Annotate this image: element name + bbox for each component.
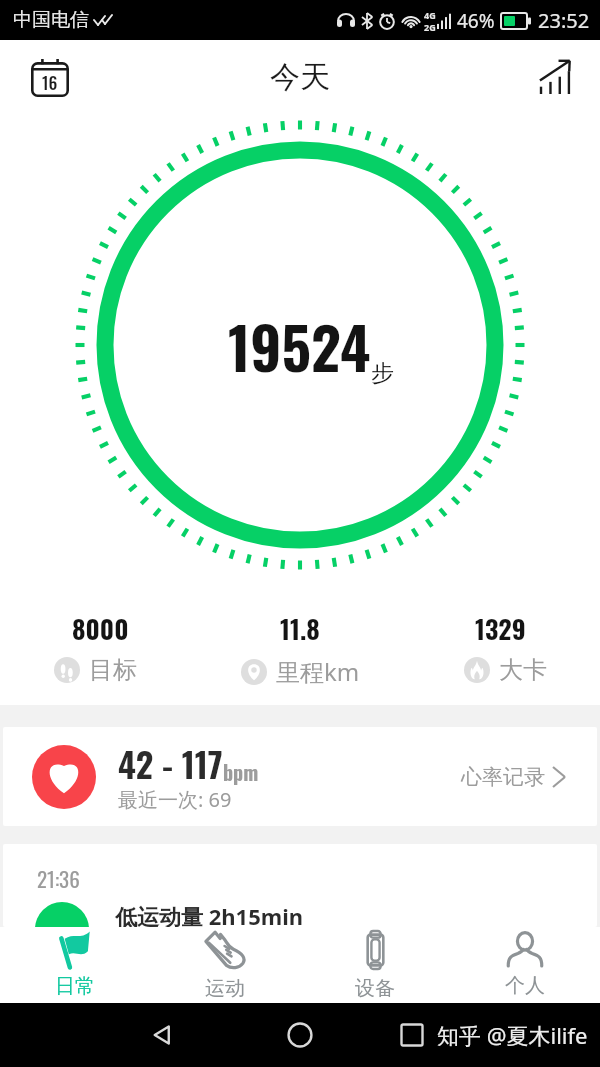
staticText: 心率记录 <box>461 764 545 790</box>
staticText: 46% <box>457 8 495 34</box>
staticText: 知乎 @夏木ilife <box>437 1020 588 1050</box>
staticText: 19524 <box>228 303 371 389</box>
staticText: 最近一次: 69 <box>118 786 232 813</box>
button[interactable]: 42 - 117 <box>3 727 597 826</box>
staticText: 42 - 117 <box>118 738 223 788</box>
staticText: 23:52 <box>538 7 590 34</box>
staticText: 个人 <box>505 973 545 998</box>
staticText: 今天 <box>270 58 330 96</box>
button[interactable]: 1329 <box>400 595 600 705</box>
staticText: 16 <box>42 70 58 95</box>
staticText: 低运动量 2h15min <box>115 901 304 927</box>
staticText: 日常 <box>55 974 95 999</box>
staticText: 11.8 <box>280 609 320 648</box>
staticText: 21:36 <box>37 863 80 894</box>
button[interactable]: Recents <box>395 1018 429 1052</box>
staticText: 运动 <box>205 976 245 1001</box>
button[interactable]: 8000 <box>0 595 200 705</box>
staticText: 目标 <box>89 655 137 685</box>
button[interactable]: 个人 <box>450 927 600 1003</box>
button[interactable]: 21:36 <box>3 844 597 927</box>
staticText: 8000 <box>72 609 129 648</box>
button[interactable]: 设备 <box>300 927 450 1003</box>
button[interactable]: Back <box>142 1015 182 1055</box>
button[interactable]: 日常 <box>0 927 150 1003</box>
staticText: 步 <box>371 359 394 388</box>
staticText: 4G <box>424 9 436 21</box>
staticText: 里程km <box>276 655 360 688</box>
staticText: 2G <box>424 21 436 33</box>
staticText: 1329 <box>475 609 526 648</box>
staticText: 大卡 <box>499 655 547 685</box>
staticText: bpm <box>223 757 259 787</box>
button[interactable]: Calendar <box>26 54 74 102</box>
button[interactable]: Statistics <box>530 52 578 100</box>
button[interactable]: Home <box>280 1015 320 1055</box>
staticText: 中国电信 <box>13 8 89 32</box>
button[interactable]: 运动 <box>150 927 300 1003</box>
button[interactable]: 11.8 <box>200 595 400 705</box>
staticText: 设备 <box>355 976 395 1001</box>
